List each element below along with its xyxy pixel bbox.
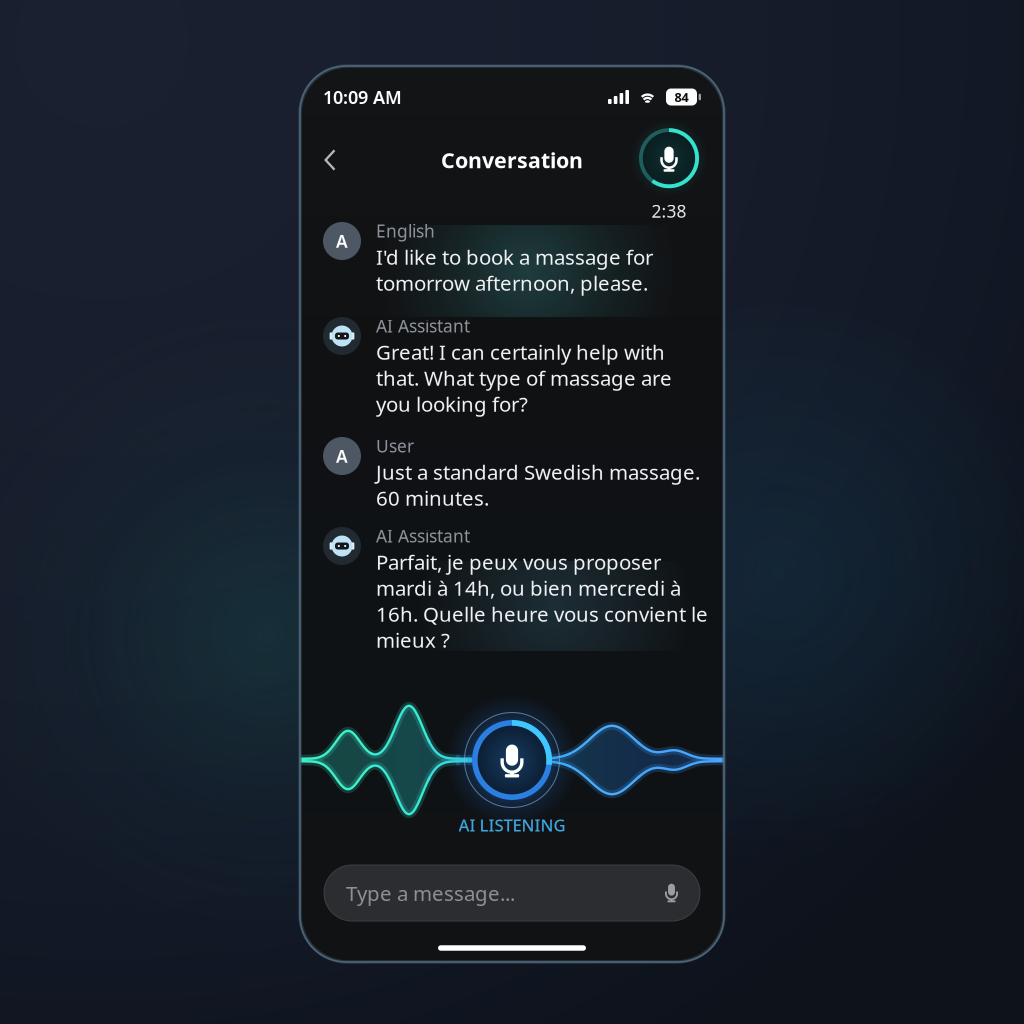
button[interactable]: Recording timer 2:38 (630, 119, 708, 223)
staticText: English (376, 219, 435, 243)
staticText: 16h. Quelle heure vous convient le (376, 600, 708, 628)
staticText: tomorrow afternoon, please. (376, 269, 648, 297)
staticText: 10:09 AM (323, 85, 402, 109)
staticText: I'd like to book a massage for (376, 243, 653, 271)
staticText: 60 minutes. (376, 484, 489, 512)
staticText: Conversation (441, 145, 583, 175)
staticText: Just a standard Swedish massage. (376, 458, 700, 486)
staticText: AI LISTENING (458, 814, 565, 836)
staticText: you looking for? (376, 390, 528, 418)
staticText: mieux ? (376, 626, 450, 654)
button[interactable]: Back (312, 137, 348, 183)
staticText: mardi à 14h, ou bien mercredi à (376, 574, 681, 602)
button[interactable]: AI listening (446, 694, 578, 826)
staticText: that. What type of massage are (376, 364, 672, 392)
staticText: User (376, 434, 414, 458)
staticText: Type a message... (346, 879, 515, 907)
staticText: A (336, 229, 348, 253)
staticText: Parfait, je peux vous proposer (376, 548, 661, 576)
staticText: 2:38 (651, 199, 686, 223)
staticText: AI Assistant (376, 524, 470, 548)
staticText: Great! I can certainly help with (376, 338, 665, 366)
staticText: A (336, 444, 348, 468)
button[interactable]: Type a message (324, 865, 700, 921)
staticText: AI Assistant (376, 314, 470, 338)
staticText: 84 (674, 88, 688, 106)
